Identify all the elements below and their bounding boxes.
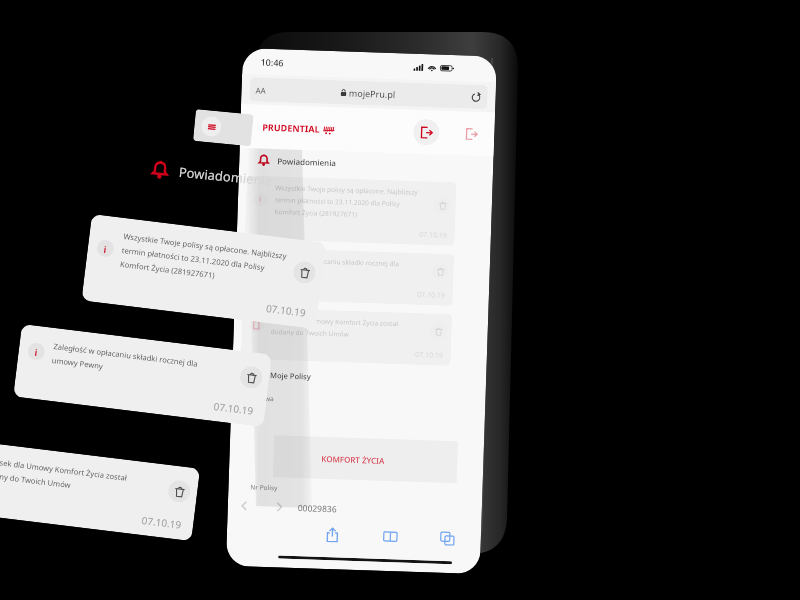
button[interactable]: Reload [470, 92, 482, 103]
staticText: Wszystkie Twoje polisy są opłacone. Najb… [275, 183, 418, 197]
staticText: AA [255, 84, 267, 96]
staticText: 07.10.19 [14, 375, 254, 418]
staticText: PRUDENTIAL [262, 121, 321, 135]
button[interactable]: Menu [193, 109, 254, 146]
staticText: Komfort Życia (281927671) [274, 207, 358, 219]
staticText: Zaległość w opłacaniu składki rocznej dl… [273, 255, 400, 268]
staticText: Komfort Życia (281927671) [119, 259, 216, 280]
staticText: KOMFORT ŻYCIA [321, 453, 385, 466]
staticText: termin płatności to 23.11.2020 dla Polis… [121, 245, 265, 272]
staticText: Powiadomienia [277, 155, 336, 168]
staticText: i [34, 346, 38, 358]
staticText: umowy Pewny [51, 355, 104, 371]
button[interactable]: Log out [413, 119, 440, 145]
staticText: wysłany do Twoich Umów [0, 469, 72, 490]
staticText: 10:46 [260, 56, 285, 68]
staticText: 07.10.19 [241, 344, 443, 361]
staticText: dodany do Twoich Umów [270, 327, 350, 339]
staticText: termin płatności to 23.11.2020 dla Polis… [275, 195, 400, 208]
staticText: 07.10.19 [245, 224, 447, 241]
staticText: i [103, 243, 107, 255]
staticText: umowy Pewny [272, 267, 318, 278]
button[interactable]: i [81, 214, 326, 329]
staticText: Moje Polisy [270, 370, 311, 381]
button[interactable]: Delete notification [239, 365, 263, 390]
button[interactable]: i [243, 247, 454, 306]
staticText: mojePru.pl [346, 86, 396, 100]
staticText: Nr Polisy [250, 482, 278, 492]
button[interactable]: Share [325, 527, 340, 542]
staticText: Nazwa [253, 393, 275, 403]
staticText: Wniosek dla Umowy Komfort Życia został [271, 315, 398, 328]
staticText: 00029836 [298, 502, 337, 515]
button[interactable]: Delete notification [167, 479, 191, 504]
button[interactable]: Wniosek dla Umowy Komfort Życia został [241, 307, 452, 366]
staticText: Zaległość w opłacaniu składki rocznej dl… [53, 341, 199, 369]
button[interactable]: Back [238, 499, 251, 512]
button[interactable]: Powiadomienia [149, 159, 273, 191]
button[interactable]: i [13, 324, 272, 427]
staticText: Wszystkie Twoje polisy są opłacone. Najb… [123, 231, 288, 261]
staticText: Powiadomienia [178, 163, 273, 190]
button[interactable]: i [0, 438, 200, 541]
button[interactable]: Tabs [440, 531, 455, 546]
button[interactable]: Delete notification [292, 260, 317, 285]
staticText: 07.10.19 [0, 489, 182, 532]
button[interactable]: Forward [273, 500, 286, 514]
button[interactable]: Delete [429, 322, 447, 340]
button[interactable]: Delete [434, 196, 451, 214]
staticText: Wniosek dla Umowy Komfort Życia został [0, 455, 128, 483]
staticText: 07.10.19 [82, 278, 306, 320]
button[interactable]: AA [255, 77, 482, 109]
button[interactable]: i [245, 175, 457, 246]
staticText: i [257, 261, 260, 271]
button[interactable]: Bookmarks [383, 529, 398, 544]
button[interactable]: Delete [431, 262, 449, 280]
staticText: i [259, 195, 262, 205]
